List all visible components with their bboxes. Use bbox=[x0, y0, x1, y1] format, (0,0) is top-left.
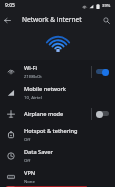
button[interactable]: Back bbox=[0, 13, 14, 27]
staticText: 39% bbox=[102, 3, 111, 9]
button[interactable]: Hotspot & tethering bbox=[0, 124, 115, 145]
staticText: None bbox=[24, 178, 35, 184]
staticText: Hotspot & tethering bbox=[24, 127, 78, 135]
staticText: Network & internet bbox=[22, 15, 82, 24]
button[interactable]: Data Saver bbox=[0, 145, 115, 166]
button[interactable]: VPN bbox=[0, 166, 115, 187]
staticText: Wi-Fi bbox=[24, 64, 38, 72]
staticText: Airplane mode bbox=[24, 110, 64, 118]
staticText: Off bbox=[24, 157, 31, 163]
button[interactable]: Mobile network bbox=[0, 82, 115, 103]
button[interactable]: Airplane mode bbox=[0, 103, 115, 124]
button[interactable]: Wi-Fi bbox=[0, 61, 115, 82]
button[interactable]: Search bbox=[99, 13, 113, 27]
staticText: Data Saver bbox=[24, 148, 53, 156]
button[interactable]: Toggle off bbox=[95, 108, 110, 119]
staticText: Off bbox=[24, 136, 31, 142]
staticText: VPN bbox=[24, 169, 36, 177]
staticText: 9:05 bbox=[5, 2, 15, 9]
staticText: Mobile network bbox=[24, 85, 66, 93]
staticText: Z1BKbOt bbox=[24, 73, 42, 79]
button[interactable]: Toggle on bbox=[95, 66, 110, 77]
staticText: 10, Airtel bbox=[24, 94, 42, 100]
